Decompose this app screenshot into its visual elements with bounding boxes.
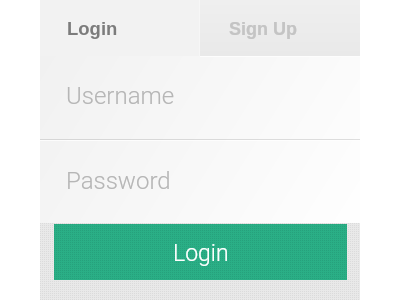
button[interactable]: Login <box>40 0 200 56</box>
staticText: Login <box>173 240 229 267</box>
button[interactable]: Password <box>40 141 360 223</box>
staticText: Sign Up <box>229 19 297 39</box>
button[interactable]: Username <box>40 56 360 139</box>
button[interactable]: Sign Up <box>200 0 360 56</box>
staticText: Password <box>66 167 171 195</box>
staticText: Login <box>67 18 118 39</box>
button[interactable]: Login <box>54 224 347 280</box>
staticText: Username <box>66 82 175 110</box>
